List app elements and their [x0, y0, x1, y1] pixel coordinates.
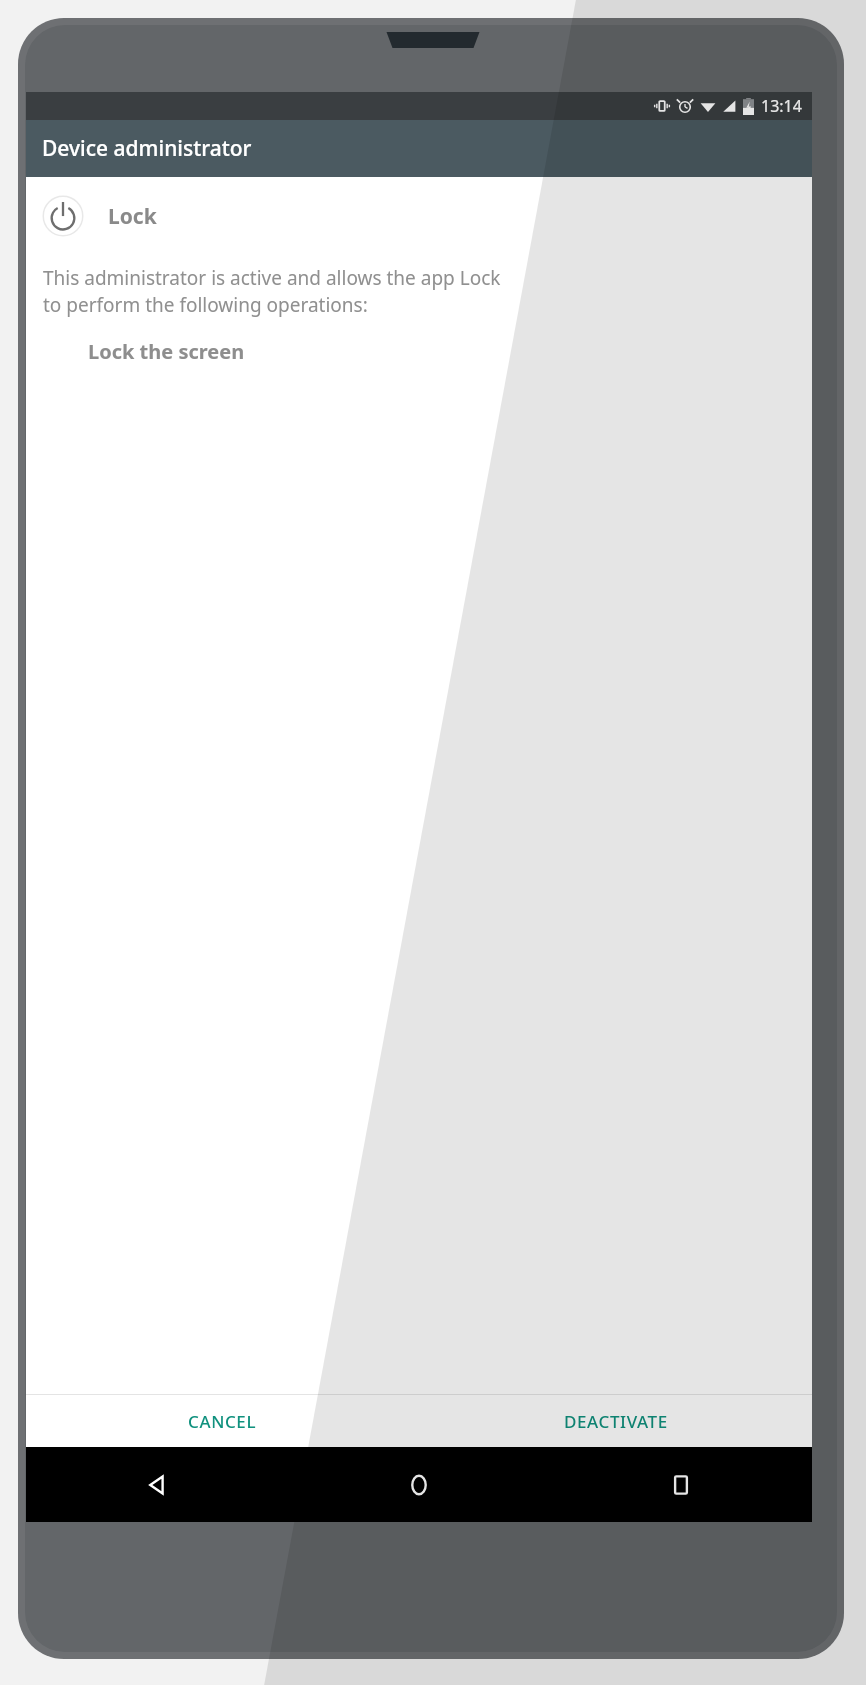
button[interactable]: CANCEL: [26, 1395, 419, 1447]
staticText: Lock the screen: [88, 338, 245, 365]
staticText: This administrator is active and allows …: [43, 265, 501, 318]
staticText: Lock: [108, 202, 157, 231]
button[interactable]: Recent apps: [550, 1447, 812, 1522]
button[interactable]: Home: [288, 1447, 550, 1522]
button[interactable]: DEACTIVATE: [419, 1395, 812, 1447]
staticText: Device administrator: [42, 134, 252, 163]
staticText: 13:14: [761, 95, 802, 117]
button[interactable]: Back: [26, 1447, 288, 1522]
staticText: CANCEL: [188, 1410, 257, 1433]
staticText: DEACTIVATE: [564, 1410, 668, 1433]
